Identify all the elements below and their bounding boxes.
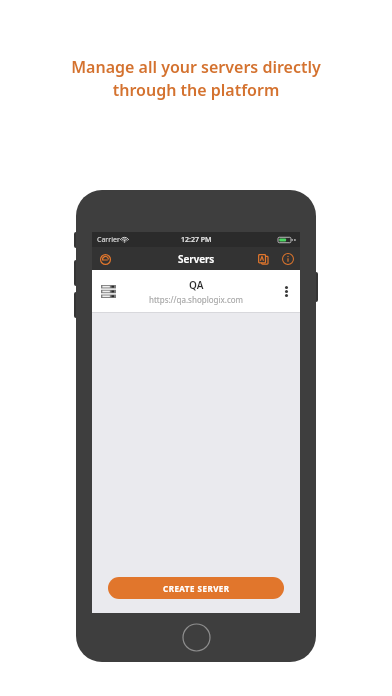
button[interactable]: CREATE SERVER (108, 577, 284, 599)
button[interactable]: Info (279, 250, 297, 268)
button[interactable]: Documents (254, 250, 272, 268)
staticText: 12:27 PM (181, 235, 212, 245)
button[interactable]: Home (182, 623, 211, 652)
staticText: Manage all your servers directly through… (26, 56, 366, 101)
button[interactable]: QA (92, 270, 300, 312)
staticText: CREATE SERVER (163, 583, 230, 594)
button[interactable]: Menu (96, 250, 114, 268)
staticText: Carrier (97, 235, 120, 245)
staticText: https://qa.shoplogix.com (149, 294, 244, 305)
staticText: Servers (178, 252, 215, 266)
button[interactable]: More options (278, 283, 294, 299)
staticText: QA (189, 278, 204, 292)
